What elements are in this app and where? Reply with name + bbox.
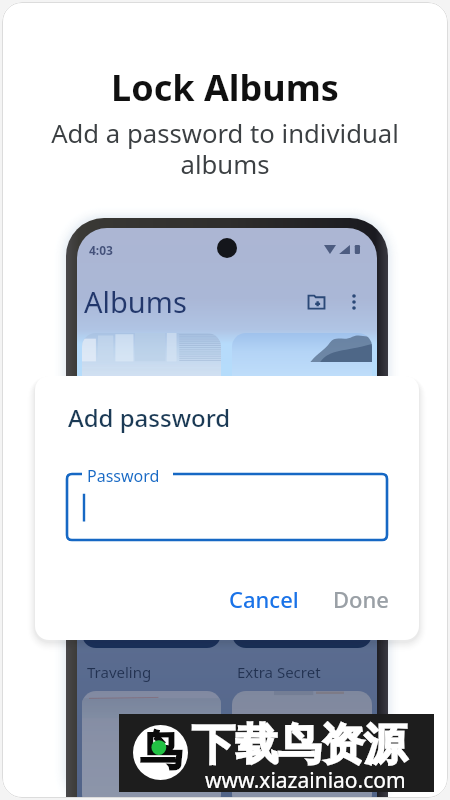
staticText: Done (333, 584, 389, 614)
staticText: Add password (68, 401, 231, 434)
staticText: 鸟 (140, 725, 182, 778)
button[interactable]: Create new album (303, 289, 329, 315)
staticText: www.xiazainiao.com (205, 766, 406, 795)
staticText: Cancel (229, 584, 299, 614)
staticText: Traveling (87, 662, 152, 682)
button[interactable]: More options (341, 289, 367, 315)
staticText: Add a password to individual albums (26, 116, 424, 182)
staticText: 4:03 (89, 242, 113, 258)
button[interactable]: Done (325, 578, 397, 620)
staticText: Lock Albums (2, 63, 448, 112)
staticText: 下载鸟资源 (192, 718, 407, 772)
button[interactable]: Cancel (221, 578, 307, 620)
staticText: Password (87, 465, 160, 487)
staticText: Albums (84, 282, 187, 321)
staticText: Extra Secret (237, 662, 321, 682)
